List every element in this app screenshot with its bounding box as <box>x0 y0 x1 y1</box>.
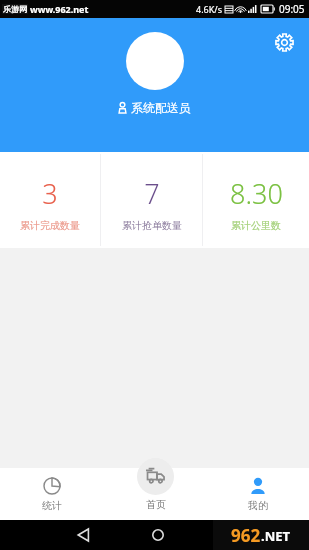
staticText: 4.6K/s <box>196 3 222 15</box>
staticText: 首页 <box>146 498 166 510</box>
staticText: 8.30 <box>230 175 283 212</box>
button[interactable]: 7 <box>101 152 202 248</box>
staticText: 系统配送员 <box>131 100 191 115</box>
staticText: 统计 <box>42 499 62 512</box>
staticText: 7 <box>144 175 160 212</box>
button[interactable]: Profile <box>206 468 309 520</box>
button[interactable]: Home <box>123 458 187 510</box>
staticText: 962 <box>231 524 261 547</box>
staticText: www.962.net <box>30 3 89 15</box>
staticText: 09:05 <box>279 2 305 16</box>
button[interactable]: Avatar <box>126 32 184 90</box>
button[interactable]: Home <box>147 524 169 546</box>
staticText: 累计抢单数量 <box>122 219 182 232</box>
staticText: 乐游网 <box>3 4 27 14</box>
staticText: .NET <box>261 527 291 545</box>
button[interactable]: 8.30 <box>203 152 309 248</box>
staticText: 我的 <box>248 499 268 512</box>
button[interactable]: 3 <box>0 152 100 248</box>
button[interactable]: Statistics <box>0 468 103 520</box>
button[interactable]: Back <box>72 524 94 546</box>
staticText: 3 <box>42 175 58 212</box>
staticText: 累计完成数量 <box>20 219 80 232</box>
staticText: 累计公里数 <box>231 219 281 232</box>
button[interactable]: Settings <box>271 29 297 55</box>
